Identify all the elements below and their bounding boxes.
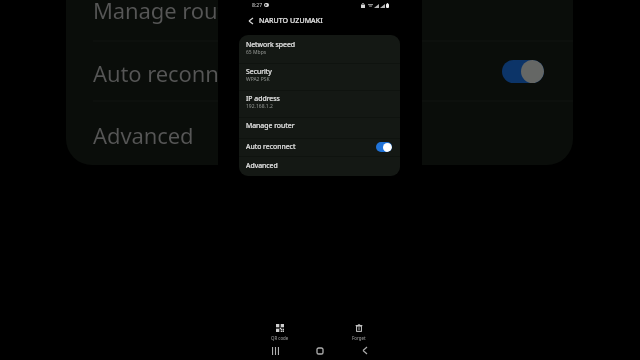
button[interactable]: Forget	[343, 320, 375, 341]
staticText: Advanced	[246, 161, 278, 170]
staticText: 192.168.1.2	[246, 103, 273, 110]
staticText: Auto reconnect	[93, 58, 250, 88]
staticText: Auto reconnect	[246, 142, 296, 151]
button[interactable]: Network speed	[239, 35, 400, 64]
button[interactable]: QR code	[264, 320, 296, 341]
button[interactable]: Home	[311, 343, 329, 358]
staticText: Network speed	[246, 40, 296, 49]
button[interactable]: Advanced	[239, 157, 400, 176]
staticText: NARUTO UZUMAKI	[259, 15, 323, 25]
staticText: Forget	[352, 335, 366, 341]
staticText: IP address	[246, 94, 280, 103]
button[interactable]: Navigate up	[242, 12, 259, 29]
staticText: Manage router	[246, 121, 295, 130]
staticText: Security	[246, 67, 272, 76]
staticText: Advanced	[93, 120, 194, 150]
staticText: WPA2 PSK	[246, 76, 270, 83]
button[interactable]: Manage router	[239, 118, 400, 139]
button[interactable]: IP address	[239, 91, 400, 118]
staticText: QR code	[271, 335, 289, 341]
staticText: Manage router	[93, 0, 247, 25]
button[interactable]: Security	[239, 64, 400, 91]
staticText: 8:27	[252, 1, 263, 8]
button[interactable]: Recents	[266, 343, 284, 358]
staticText: 65 Mbps	[246, 49, 267, 56]
button[interactable]: Back	[356, 343, 374, 358]
button[interactable]: Auto reconnect	[239, 139, 400, 157]
